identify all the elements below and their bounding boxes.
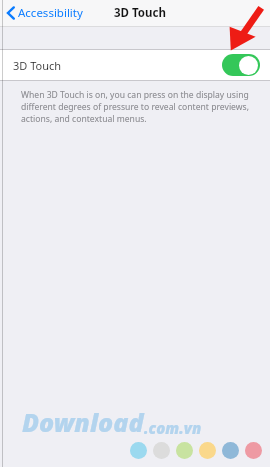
button[interactable]: Accessibility (5, 3, 85, 23)
button[interactable]: 3D Touch toggle (222, 54, 260, 76)
staticText: Accessibility (18, 5, 83, 21)
staticText: When 3D Touch is on, you can press on th… (21, 89, 254, 125)
button[interactable]: 3D Touch (0, 50, 270, 80)
staticText: Download (22, 405, 144, 439)
staticText: .com.vn (144, 418, 202, 438)
staticText: 3D Touch (114, 5, 166, 21)
staticText: 3D Touch (13, 58, 62, 73)
